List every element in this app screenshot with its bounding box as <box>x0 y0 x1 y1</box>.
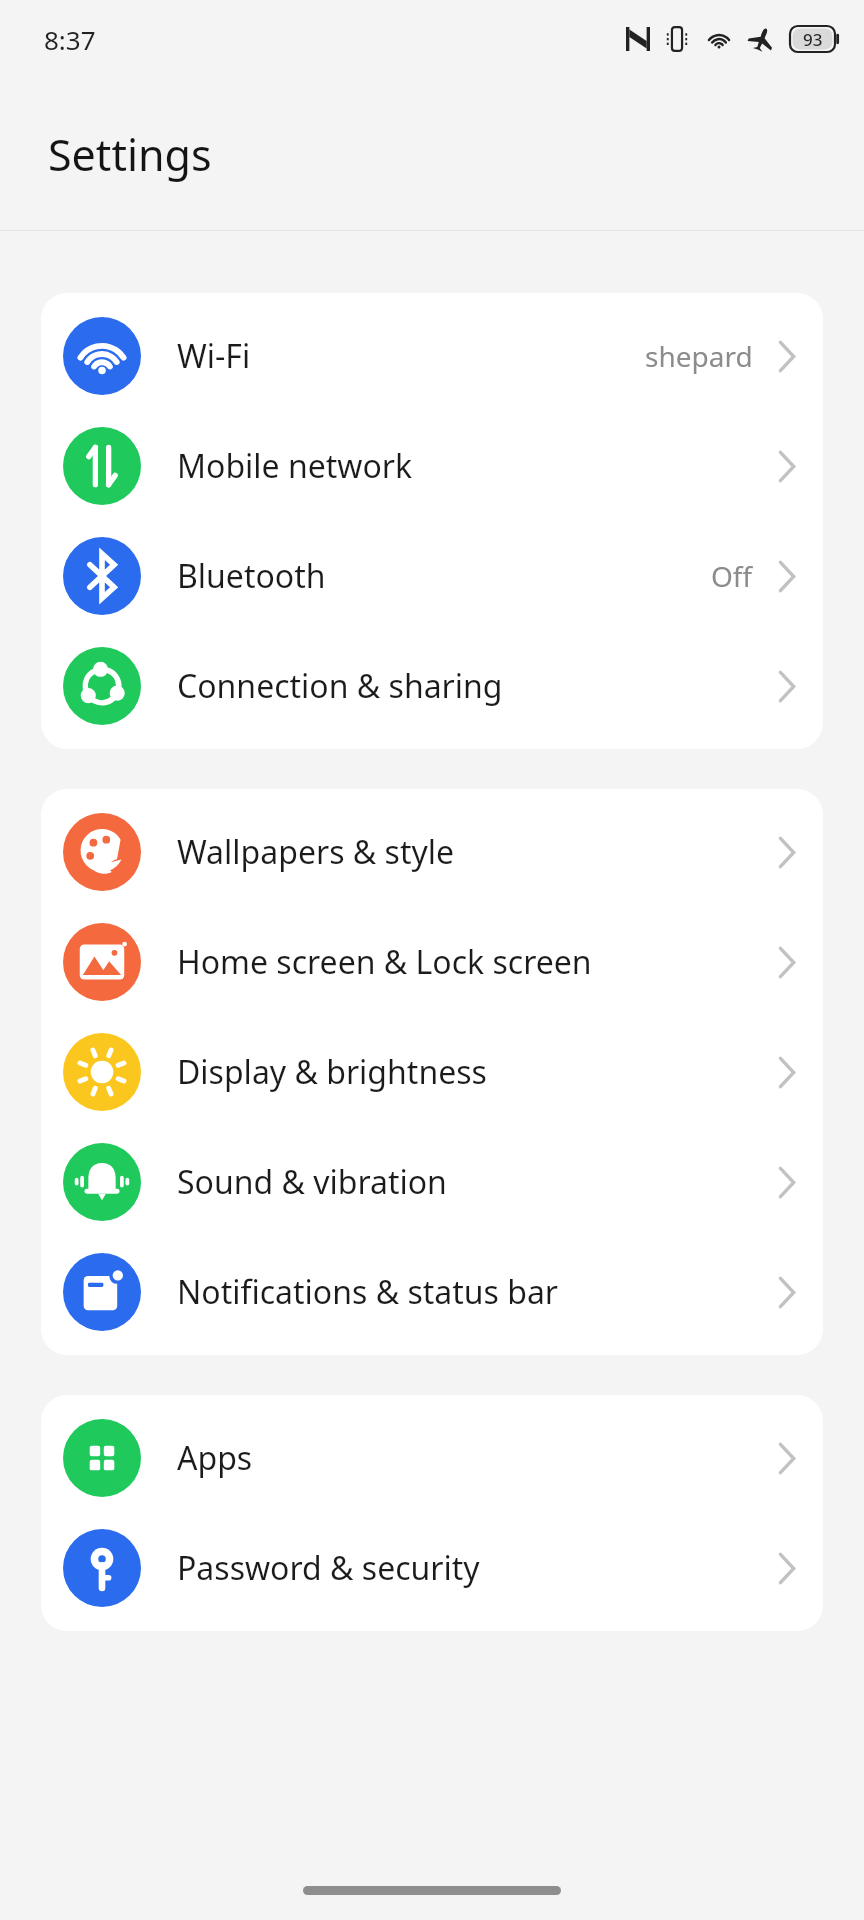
staticText: Wallpapers & style <box>177 830 455 874</box>
staticText: Apps <box>177 1436 253 1480</box>
button[interactable]: Home screen & Lock screen <box>41 907 823 1017</box>
button[interactable]: Bluetooth <box>41 521 823 631</box>
staticText: Off <box>711 557 753 595</box>
button[interactable]: Password & security <box>41 1513 823 1623</box>
staticText: Settings <box>48 125 212 184</box>
button[interactable]: Mobile network <box>41 411 823 521</box>
button[interactable]: Notifications & status bar <box>41 1237 823 1347</box>
button[interactable]: Wi-Fi <box>41 301 823 411</box>
button[interactable]: Display & brightness <box>41 1017 823 1127</box>
staticText: 8:37 <box>44 22 96 57</box>
staticText: Mobile network <box>177 444 413 488</box>
staticText: Bluetooth <box>177 554 326 598</box>
staticText: Sound & vibration <box>177 1160 447 1204</box>
staticText: Notifications & status bar <box>177 1270 559 1314</box>
staticText: Connection & sharing <box>177 664 503 708</box>
staticText: Wi-Fi <box>177 334 251 378</box>
staticText: 93 <box>803 28 823 51</box>
staticText: Display & brightness <box>177 1050 487 1094</box>
staticText: shepard <box>645 337 753 375</box>
button[interactable]: Wallpapers & style <box>41 797 823 907</box>
staticText: Password & security <box>177 1546 480 1590</box>
other: Home gesture bar <box>0 1886 864 1920</box>
button[interactable]: Sound & vibration <box>41 1127 823 1237</box>
button[interactable]: Apps <box>41 1403 823 1513</box>
staticText: Home screen & Lock screen <box>177 940 592 984</box>
button[interactable]: Connection & sharing <box>41 631 823 741</box>
